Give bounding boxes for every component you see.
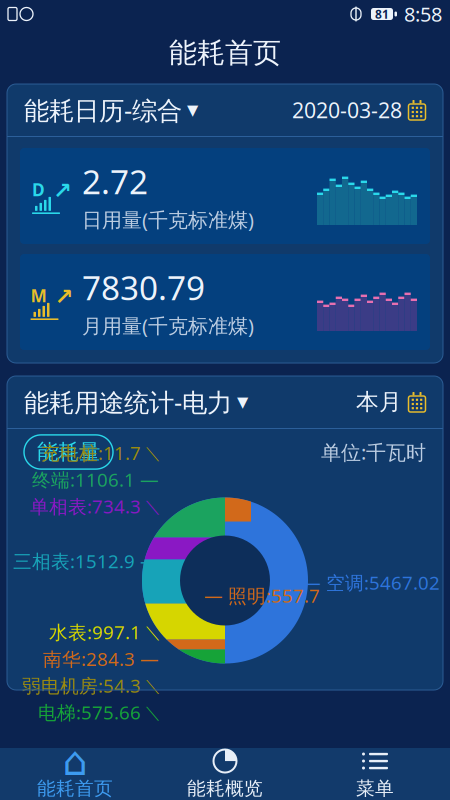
staticText: 8:58	[404, 1, 442, 27]
staticText: 三相表:1512.9 —	[13, 549, 159, 573]
staticText: 能耗日历-综合	[24, 93, 182, 127]
staticText: ↗	[53, 178, 72, 204]
button[interactable]: 2020-03-28	[292, 96, 426, 124]
button[interactable]: ⌂	[0, 748, 150, 800]
staticText: 弱电机房:54.3 ⟍	[22, 673, 159, 698]
staticText: 单位:千瓦时	[321, 439, 426, 465]
staticText: ⌂	[62, 738, 87, 784]
staticText: — 照明:557.7	[204, 583, 320, 608]
staticText: 81	[375, 6, 389, 22]
staticText: 2.72	[82, 159, 148, 203]
staticText: ↗	[54, 284, 73, 310]
staticText: 日用量(千克标准煤)	[82, 206, 254, 233]
staticText: 能耗量	[37, 439, 100, 465]
staticText: 充电桩:11.7 ⟍	[41, 440, 159, 465]
button[interactable]: 能耗日历-综合	[24, 93, 198, 127]
staticText: 2020-03-28	[292, 96, 402, 124]
button[interactable]: 菜单	[300, 748, 450, 800]
staticText: 单相表:734.3 ⟍	[30, 494, 159, 519]
staticText: 7830.79	[82, 265, 205, 309]
staticText: 能耗首页	[37, 777, 113, 800]
staticText: 能耗用途统计-电力	[24, 385, 232, 419]
staticText: ▼	[187, 102, 198, 118]
staticText: D	[32, 178, 45, 201]
button[interactable]: 本月	[356, 388, 426, 416]
button[interactable]: 能耗概览	[150, 748, 300, 800]
staticText: 本月	[356, 388, 402, 416]
staticText: 能耗概览	[187, 777, 263, 800]
staticText: ▼	[237, 394, 248, 410]
button[interactable]: 能耗量	[24, 435, 113, 469]
staticText: 能耗首页	[169, 36, 281, 70]
staticText: 月用量(千克标准煤)	[82, 312, 254, 339]
staticText: M	[30, 284, 46, 307]
staticText: 水表:997.1 ⟍	[49, 619, 159, 644]
staticText: 菜单	[356, 777, 394, 800]
staticText: 终端:1106.1 —	[32, 467, 159, 492]
staticText: 南华:284.3 —	[43, 646, 159, 671]
staticText: — 空调:5467.02	[302, 570, 440, 595]
staticText: 电梯:575.66 ⟍	[38, 700, 159, 725]
button[interactable]: 能耗用途统计-电力	[24, 385, 248, 419]
